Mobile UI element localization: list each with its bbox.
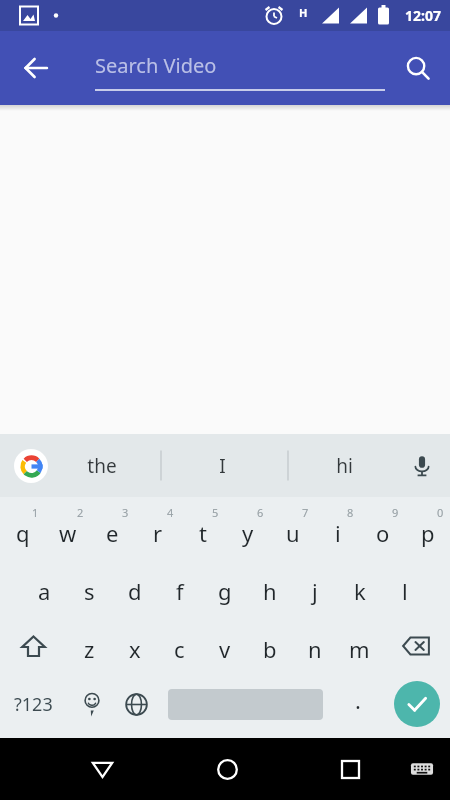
staticText: w <box>59 518 77 548</box>
staticText: h <box>263 576 277 606</box>
staticText: n <box>308 634 322 664</box>
staticText: k <box>354 576 366 606</box>
staticText: u <box>286 518 300 548</box>
button[interactable]: z <box>67 617 112 675</box>
button[interactable]: Voice input <box>400 444 444 488</box>
button[interactable]: Backspace <box>382 617 450 675</box>
staticText: b <box>263 634 277 664</box>
button[interactable]: i <box>315 501 360 559</box>
staticText: l <box>402 576 408 606</box>
staticText: t <box>199 518 207 548</box>
staticText: s <box>84 576 95 606</box>
button[interactable]: Back <box>12 44 60 92</box>
staticText: j <box>312 576 318 606</box>
button[interactable]: b <box>247 617 292 675</box>
staticText: I <box>219 453 226 479</box>
staticText: 5 <box>212 505 219 520</box>
staticText: 2 <box>77 505 84 520</box>
button[interactable]: w <box>45 501 90 559</box>
button[interactable]: a <box>22 559 67 617</box>
staticText: 4 <box>167 505 174 520</box>
button[interactable]: n <box>292 617 337 675</box>
button[interactable]: d <box>112 559 157 617</box>
button[interactable]: q <box>0 501 45 559</box>
staticText: 12:07 <box>405 6 441 25</box>
button[interactable]: Shift <box>0 617 67 675</box>
button[interactable]: hi <box>299 434 389 497</box>
button[interactable]: Back <box>76 743 128 795</box>
button[interactable]: r <box>135 501 180 559</box>
button[interactable]: . <box>336 675 380 733</box>
staticText: Search Video <box>95 52 217 79</box>
staticText: o <box>376 518 390 548</box>
button[interactable]: j <box>292 559 337 617</box>
button[interactable]: Emoji <box>70 675 114 733</box>
button[interactable]: ?123 <box>0 675 66 733</box>
button[interactable]: Switch keyboard <box>400 747 444 791</box>
button[interactable]: the <box>57 434 147 497</box>
button[interactable]: k <box>337 559 382 617</box>
button[interactable]: Home <box>201 743 253 795</box>
staticText: m <box>349 634 370 664</box>
staticText: e <box>106 518 119 548</box>
button[interactable]: s <box>67 559 112 617</box>
staticText: z <box>84 634 95 664</box>
staticText: v <box>219 634 231 664</box>
staticText: 7 <box>302 505 309 520</box>
staticText: 0 <box>437 505 444 520</box>
button[interactable]: x <box>112 617 157 675</box>
staticText: d <box>128 576 142 606</box>
button[interactable]: I <box>177 434 267 497</box>
staticText: 3 <box>122 505 129 520</box>
staticText: H <box>299 5 308 20</box>
button[interactable]: l <box>382 559 427 617</box>
staticText: 6 <box>257 505 264 520</box>
button[interactable]: m <box>337 617 382 675</box>
button[interactable]: v <box>202 617 247 675</box>
button[interactable]: Recent apps <box>324 743 376 795</box>
button[interactable]: e <box>90 501 135 559</box>
button[interactable]: Search <box>394 44 442 92</box>
staticText: 9 <box>392 505 399 520</box>
button[interactable]: Search Video <box>95 45 385 91</box>
staticText: c <box>174 634 185 664</box>
button[interactable]: y <box>225 501 270 559</box>
button[interactable]: o <box>360 501 405 559</box>
button[interactable]: Change language <box>114 675 158 733</box>
staticText: hi <box>336 453 353 479</box>
staticText: r <box>153 518 163 548</box>
staticText: p <box>421 518 435 548</box>
staticText: q <box>16 518 30 548</box>
button[interactable]: p <box>405 501 450 559</box>
staticText: 8 <box>347 505 354 520</box>
staticText: y <box>242 518 254 548</box>
button[interactable]: Enter <box>394 681 440 727</box>
button[interactable]: c <box>157 617 202 675</box>
button[interactable]: t <box>180 501 225 559</box>
button[interactable]: h <box>247 559 292 617</box>
button[interactable]: f <box>157 559 202 617</box>
staticText: f <box>176 576 184 606</box>
button[interactable]: g <box>202 559 247 617</box>
staticText: ?123 <box>14 692 53 717</box>
staticText: g <box>218 576 232 606</box>
staticText: . <box>355 685 361 715</box>
staticText: the <box>87 453 117 479</box>
button[interactable]: u <box>270 501 315 559</box>
staticText: a <box>38 576 51 606</box>
staticText: 1 <box>32 505 39 520</box>
staticText: x <box>129 634 141 664</box>
staticText: i <box>335 518 341 548</box>
button[interactable]: Google <box>14 449 48 483</box>
